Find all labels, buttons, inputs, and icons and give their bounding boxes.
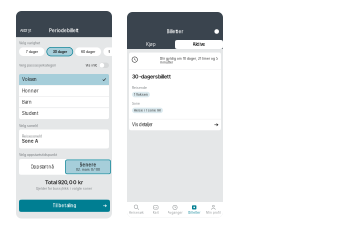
staticText: Voksen <box>22 77 37 82</box>
button[interactable]: 9 <box>103 47 115 56</box>
button[interactable]: Til betaling <box>19 200 110 212</box>
staticText: Senere <box>79 162 96 167</box>
button[interactable]: Avganger <box>165 202 185 217</box>
staticText: 7 dager <box>26 50 38 54</box>
staticText: 9 <box>108 50 110 54</box>
staticText: Barn <box>22 100 32 105</box>
button[interactable]: Kart <box>146 202 165 217</box>
button[interactable]: 30 dager <box>47 47 73 56</box>
staticText: Oppstart nå <box>30 164 53 169</box>
staticText: Billetter <box>166 29 183 34</box>
staticText: Avganger <box>167 211 182 215</box>
staticText: Reise i 1 sone (A) <box>134 108 161 112</box>
button[interactable]: Hjelp <box>214 29 219 34</box>
button[interactable]: 60 dager <box>75 47 101 56</box>
staticText: Periodebillett <box>49 28 79 33</box>
button[interactable]: Avbryt <box>19 27 32 34</box>
staticText: Billetter <box>188 211 200 215</box>
staticText: Gjelder for buss/trikk i valgte soner <box>36 187 92 190</box>
staticText: 1 Voksen <box>134 93 148 96</box>
staticText: Blir gyldig om 10 dager, 21 timer og 5 m… <box>160 57 218 64</box>
staticText: Velg passasjerkategori <box>19 63 56 67</box>
staticText: Reisende <box>132 86 147 90</box>
staticText: Reisesøk <box>129 211 144 215</box>
staticText: Vis info <box>85 63 97 67</box>
button[interactable]: Barn <box>19 97 109 108</box>
button[interactable]: Honnør <box>19 85 109 96</box>
staticText: 30-dagersbillett <box>132 73 171 80</box>
staticText: 30 dager <box>53 50 67 54</box>
button[interactable]: Senere <box>65 159 110 175</box>
button[interactable]: Kjøp <box>127 40 175 49</box>
staticText: Min profil <box>206 211 221 215</box>
staticText: Total 920,00 kr <box>45 179 83 186</box>
button[interactable]: Voksen <box>19 74 109 85</box>
button[interactable]: Oppstart nå <box>18 159 65 175</box>
staticText: Vis detaljer <box>132 122 153 127</box>
button[interactable]: Reisesone(r) <box>19 129 109 148</box>
staticText: 60 dager <box>81 50 95 54</box>
staticText: Sone A <box>22 139 38 144</box>
staticText: Velg sone(r) <box>19 124 38 128</box>
button[interactable]: Student <box>19 108 109 119</box>
staticText: 02. mars 07:00 <box>76 168 100 171</box>
staticText: Velg oppstartstidspunkt <box>19 153 57 157</box>
staticText: Student <box>22 111 38 116</box>
staticText: Til betaling <box>52 203 76 208</box>
staticText: Sone <box>132 102 140 105</box>
staticText: Honnør <box>22 88 39 93</box>
button[interactable]: Vis detaljer <box>129 119 221 130</box>
staticText: Aktive <box>192 42 205 47</box>
staticText: Kjøp <box>146 42 156 47</box>
button[interactable]: Min profil <box>204 202 223 217</box>
button[interactable]: Aktive <box>175 40 223 49</box>
button[interactable]: Vis info <box>85 63 109 68</box>
staticText: Reisesone(r) <box>22 134 42 138</box>
staticText: Avbryt <box>20 28 31 33</box>
button[interactable]: 7 dager <box>19 47 44 56</box>
staticText: Velg varighet <box>19 41 40 45</box>
staticText: Kart <box>153 211 159 215</box>
button[interactable]: Reisesøk <box>127 202 146 217</box>
button[interactable]: Billetter <box>185 202 204 217</box>
